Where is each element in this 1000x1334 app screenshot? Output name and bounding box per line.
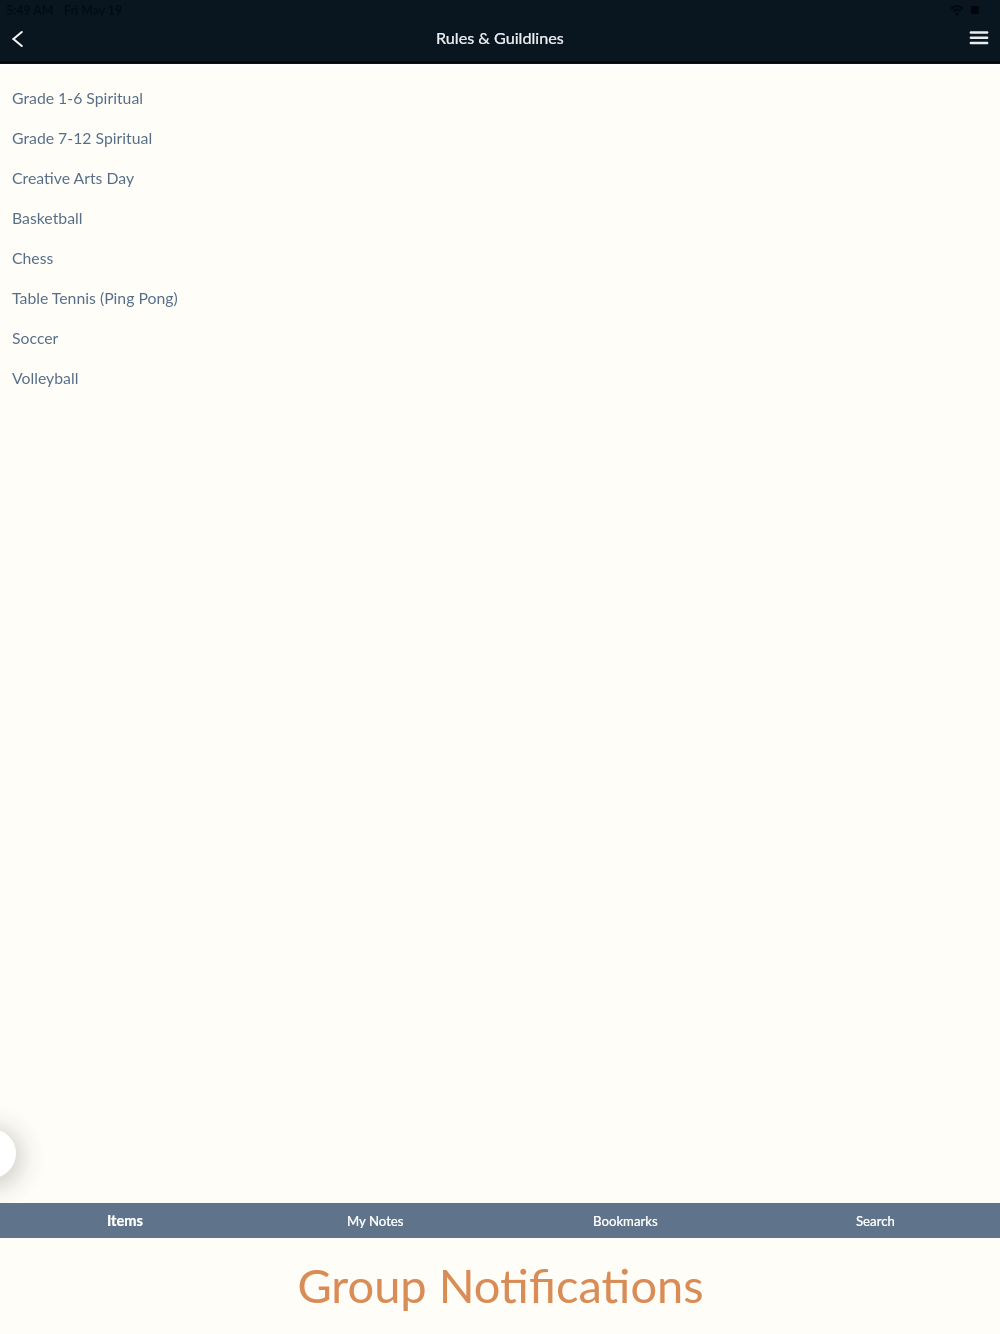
staticText: Chess <box>12 248 54 267</box>
button[interactable]: Menu <box>958 22 1000 64</box>
button[interactable]: Soccer <box>0 317 1000 357</box>
button[interactable]: Grade 7-12 Spiritual <box>0 117 1000 157</box>
button[interactable]: Grade 1-6 Spiritual <box>0 77 1000 117</box>
staticText: Volleyball <box>12 368 79 387</box>
staticText: My Notes <box>347 1213 404 1229</box>
staticText: Basketball <box>12 208 83 227</box>
staticText: Bookmarks <box>593 1213 658 1229</box>
staticText: 5:49 AM <box>6 3 54 18</box>
button[interactable]: Table Tennis (Ping Pong) <box>0 277 1000 317</box>
staticText: Grade 1-6 Spiritual <box>12 88 143 107</box>
button[interactable]: Volleyball <box>0 357 1000 397</box>
staticText: Grade 7-12 Spiritual <box>12 128 153 147</box>
staticText: Group Notifications <box>297 1257 704 1313</box>
button[interactable]: Open drawer <box>0 1080 33 1129</box>
staticText: Search <box>856 1213 895 1229</box>
staticText: Table Tennis (Ping Pong) <box>12 288 178 307</box>
staticText: Creative Arts Day <box>12 168 135 187</box>
button[interactable]: Basketball <box>0 197 1000 237</box>
button[interactable]: My Notes <box>250 1203 500 1238</box>
staticText: Soccer <box>12 328 59 347</box>
button[interactable]: Creative Arts Day <box>0 157 1000 197</box>
button[interactable]: Search <box>750 1203 1000 1238</box>
button[interactable]: Back <box>0 22 40 64</box>
button[interactable]: Chess <box>0 237 1000 277</box>
staticText: Rules & Guildlines <box>436 28 564 47</box>
staticText: Items <box>107 1212 143 1230</box>
staticText: Fri May 19 <box>64 3 123 18</box>
button[interactable]: Items <box>0 1203 250 1238</box>
button[interactable]: Bookmarks <box>500 1203 750 1238</box>
